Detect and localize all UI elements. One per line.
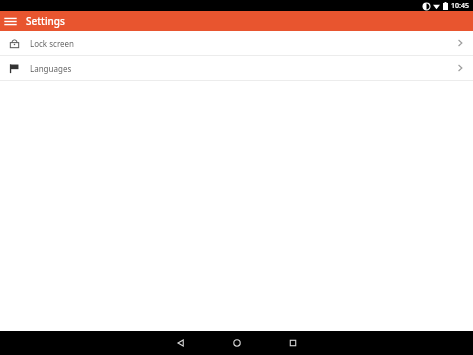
- staticText: Lock screen: [30, 38, 75, 49]
- staticText: Settings: [26, 14, 65, 28]
- staticText: 10:45: [451, 1, 469, 11]
- button[interactable]: Back: [164, 331, 198, 355]
- staticText: Languages: [30, 63, 72, 74]
- button[interactable]: Home: [220, 331, 254, 355]
- button[interactable]: Open navigation menu: [0, 11, 20, 31]
- button[interactable]: Languages: [0, 56, 473, 80]
- button[interactable]: Lock screen: [0, 31, 473, 55]
- button[interactable]: Recent apps: [276, 331, 310, 355]
